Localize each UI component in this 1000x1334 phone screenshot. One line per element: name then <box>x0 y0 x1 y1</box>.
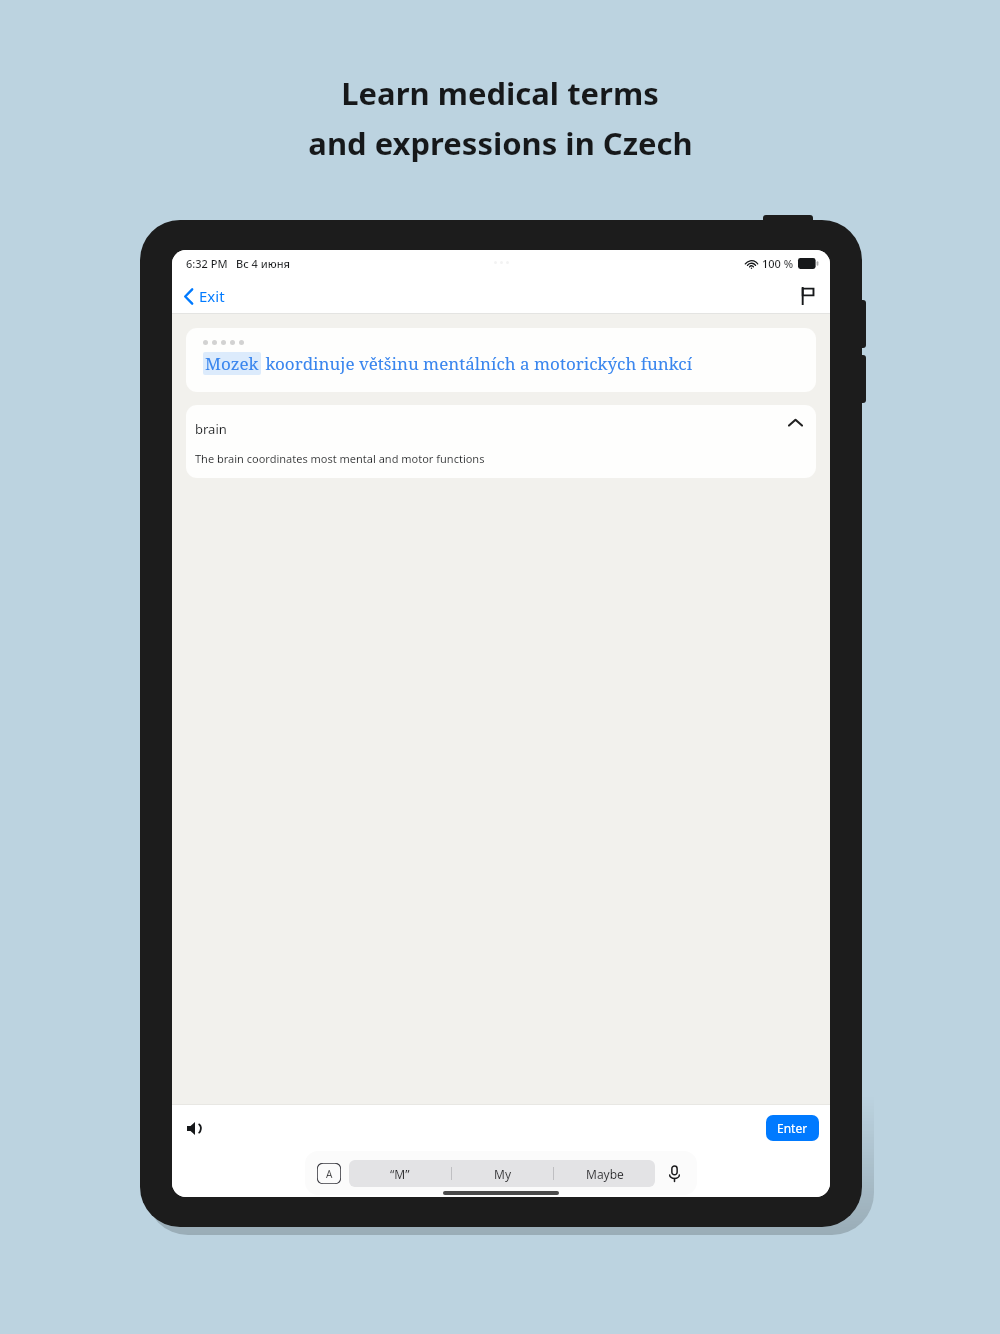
button[interactable]: Report <box>797 284 818 308</box>
staticText: 100 % <box>762 256 794 271</box>
staticText: brain <box>195 420 227 438</box>
button[interactable]: brain <box>186 405 816 478</box>
button[interactable]: Collapse <box>784 414 807 432</box>
staticText: and expressions in Czech <box>308 122 693 164</box>
button[interactable]: Exit <box>180 283 229 309</box>
button[interactable]: Autocorrect <box>317 1163 341 1184</box>
button[interactable]: Play audio <box>182 1116 208 1141</box>
button[interactable]: “M” <box>349 1160 451 1187</box>
staticText: koordinuje většinu mentálních a motorick… <box>261 352 693 375</box>
staticText: A <box>326 1167 333 1181</box>
staticText: The brain coordinates most mental and mo… <box>195 451 485 466</box>
staticText: “M” <box>390 1166 410 1182</box>
staticText: 6:32 PM <box>186 256 228 271</box>
button[interactable]: My <box>452 1160 553 1187</box>
button[interactable]: Enter <box>766 1115 819 1141</box>
button[interactable]: Dictate <box>663 1163 685 1185</box>
staticText: Learn medical terms <box>341 72 659 114</box>
button[interactable]: Maybe <box>554 1160 655 1187</box>
staticText: Maybe <box>586 1166 624 1182</box>
staticText: Mozek <box>205 352 259 375</box>
button[interactable]: Mozek <box>186 328 816 392</box>
staticText: Вс 4 июня <box>236 256 291 271</box>
staticText: Enter <box>777 1120 808 1136</box>
staticText: Exit <box>199 286 225 306</box>
staticText: My <box>494 1166 512 1182</box>
